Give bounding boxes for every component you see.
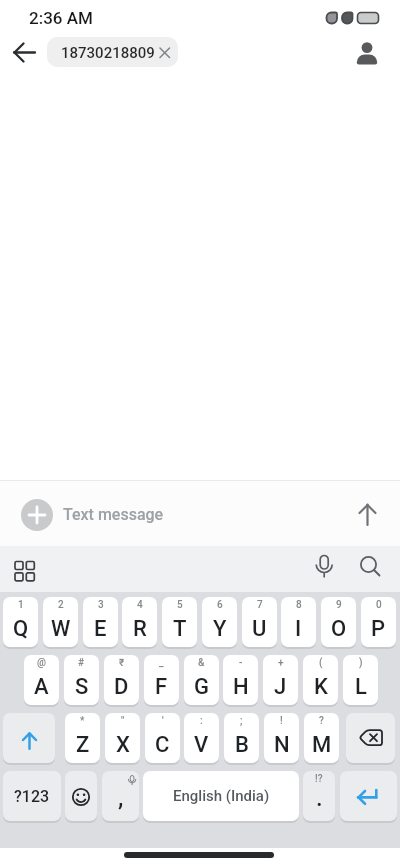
button[interactable]: Text message: [60, 499, 320, 531]
staticText: 18730218809: [61, 44, 155, 62]
staticText: 7: [257, 599, 263, 611]
staticText: 1: [18, 599, 24, 611]
staticText: .: [316, 784, 323, 812]
button[interactable]: [346, 713, 395, 763]
button[interactable]: 0: [361, 597, 396, 647]
staticText: R: [133, 616, 147, 642]
staticText: *: [80, 715, 85, 727]
button[interactable]: ?123: [3, 771, 61, 821]
button[interactable]: [8, 555, 40, 587]
staticText: English (India): [173, 787, 270, 805]
staticText: (: [319, 657, 323, 669]
button[interactable]: ,: [102, 771, 139, 821]
staticText: F: [155, 674, 168, 700]
button[interactable]: 18730218809: [47, 37, 178, 67]
button[interactable]: !?: [303, 771, 335, 821]
button[interactable]: 6: [202, 597, 237, 647]
staticText: 5: [177, 599, 183, 611]
button[interactable]: ₹: [104, 655, 139, 705]
staticText: A: [34, 674, 49, 700]
button[interactable]: *: [65, 713, 100, 763]
button[interactable]: 2: [43, 597, 78, 647]
staticText: 0: [376, 599, 382, 611]
staticText: 3: [98, 599, 104, 611]
staticText: W: [51, 616, 71, 642]
staticText: !?: [315, 773, 323, 785]
staticText: Y: [213, 616, 227, 642]
staticText: ,: [118, 784, 124, 812]
staticText: O: [331, 616, 347, 642]
staticText: 4: [137, 599, 143, 611]
button[interactable]: #: [64, 655, 99, 705]
staticText: +: [278, 657, 284, 669]
staticText: D: [114, 674, 129, 700]
button[interactable]: (: [303, 655, 338, 705]
button[interactable]: [340, 771, 397, 821]
staticText: U: [252, 616, 267, 642]
button[interactable]: ?: [304, 713, 339, 763]
button[interactable]: [354, 555, 386, 587]
button[interactable]: +: [263, 655, 298, 705]
staticText: ': [162, 715, 164, 727]
staticText: Q: [13, 616, 29, 642]
button[interactable]: ': [145, 713, 180, 763]
staticText: Text message: [63, 505, 164, 524]
staticText: G: [194, 674, 209, 700]
button[interactable]: ;: [224, 713, 259, 763]
button[interactable]: ": [105, 713, 140, 763]
staticText: ?: [319, 715, 324, 727]
button[interactable]: @: [24, 655, 59, 705]
staticText: ": [121, 715, 125, 727]
button[interactable]: 7: [242, 597, 277, 647]
staticText: &: [198, 657, 205, 669]
staticText: ): [359, 657, 363, 669]
button[interactable]: _: [144, 655, 179, 705]
staticText: Z: [76, 732, 90, 758]
button[interactable]: 4: [122, 597, 157, 647]
staticText: 8: [296, 599, 302, 611]
button[interactable]: 8: [281, 597, 316, 647]
button[interactable]: -: [223, 655, 258, 705]
staticText: I: [295, 616, 302, 642]
staticText: @: [37, 657, 46, 669]
staticText: N: [274, 732, 290, 758]
staticText: S: [75, 674, 89, 700]
button[interactable]: [8, 38, 44, 68]
staticText: K: [314, 674, 328, 700]
button[interactable]: [348, 36, 382, 70]
staticText: ;: [240, 715, 243, 727]
staticText: H: [233, 674, 249, 700]
button[interactable]: [3, 713, 55, 763]
staticText: C: [155, 732, 170, 758]
button[interactable]: ): [343, 655, 378, 705]
staticText: M: [312, 732, 332, 758]
staticText: #: [78, 657, 85, 669]
button[interactable]: :: [184, 713, 219, 763]
button[interactable]: 1: [3, 597, 38, 647]
staticText: _: [159, 657, 164, 669]
button[interactable]: [65, 771, 97, 821]
staticText: J: [274, 674, 287, 700]
staticText: 2:36 AM: [29, 8, 93, 28]
staticText: X: [116, 732, 130, 758]
staticText: :: [200, 715, 203, 727]
staticText: ?123: [14, 787, 50, 806]
button[interactable]: [352, 500, 383, 531]
button[interactable]: [308, 555, 340, 587]
button[interactable]: English (India): [143, 771, 299, 821]
staticText: L: [355, 674, 367, 700]
button[interactable]: 5: [162, 597, 197, 647]
staticText: ₹: [119, 657, 125, 669]
button[interactable]: !: [264, 713, 299, 763]
staticText: B: [235, 732, 249, 758]
button[interactable]: &: [184, 655, 219, 705]
button[interactable]: 9: [321, 597, 356, 647]
button[interactable]: [21, 499, 53, 531]
staticText: T: [173, 616, 187, 642]
staticText: V: [194, 732, 209, 758]
button[interactable]: 3: [83, 597, 118, 647]
staticText: -: [239, 657, 243, 669]
staticText: P: [371, 616, 386, 642]
staticText: 9: [336, 599, 342, 611]
staticText: 2: [58, 599, 64, 611]
